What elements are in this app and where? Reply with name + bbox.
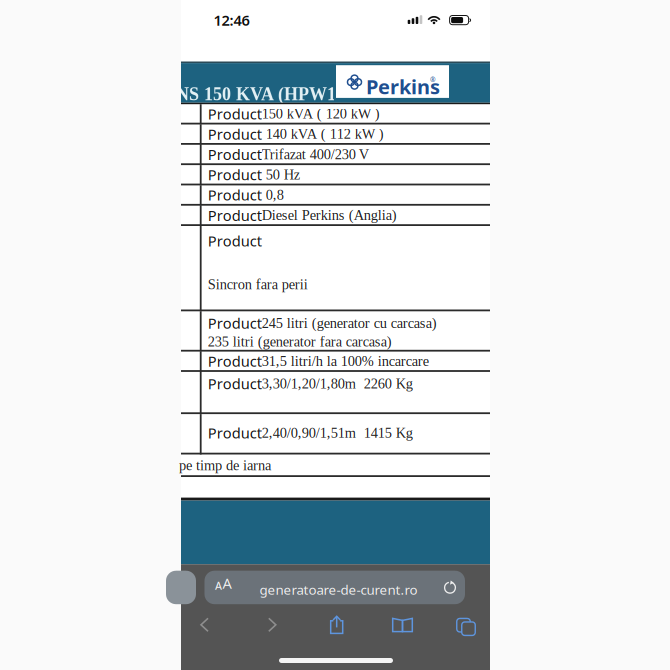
button[interactable]: Share <box>323 611 351 639</box>
staticText: Product <box>208 374 262 393</box>
staticText: 2,40/0,90/1,51m 1415 Kg <box>262 425 413 441</box>
staticText: Product <box>208 351 262 371</box>
staticText: Product <box>208 313 262 333</box>
staticText: 150 kVA ( 120 kW ) <box>262 106 380 122</box>
staticText: pe timp de iarna <box>179 457 271 473</box>
button[interactable]: A <box>204 571 465 604</box>
staticText: Product <box>208 104 262 123</box>
staticText: Product <box>208 165 266 184</box>
staticText: Product <box>208 185 266 205</box>
staticText: 31,5 litri/h la 100% incarcare <box>262 353 429 369</box>
staticText: A <box>222 573 231 593</box>
staticText: 12:46 <box>213 10 249 30</box>
staticText: 3,30/1,20/1,80m 2260 Kg <box>262 376 413 392</box>
staticText: 140 kVA ( 112 kW ) <box>266 126 384 142</box>
staticText: Product <box>208 231 262 250</box>
staticText: 50 Hz <box>266 167 300 182</box>
staticText: Product <box>208 145 262 164</box>
staticText: NS 150 KVA (HPW140) <box>176 84 360 104</box>
staticText: Product <box>208 124 266 144</box>
staticText: Trifazat 400/230 V <box>262 146 369 162</box>
button[interactable]: Forward <box>258 611 286 639</box>
button[interactable]: Bookmarks <box>388 611 416 639</box>
staticText: generatoare-de-curent.ro <box>259 581 417 598</box>
staticText: ® <box>430 75 436 84</box>
button[interactable]: Back <box>190 611 218 639</box>
staticText: Perkins <box>366 73 440 100</box>
staticText: 245 litri (generator cu carcasa) <box>262 315 437 331</box>
staticText: A <box>215 578 222 593</box>
staticText: Sincron fara perii <box>208 276 308 292</box>
staticText: Product <box>208 423 262 443</box>
staticText: Diesel Perkins (Anglia) <box>262 207 397 223</box>
staticText: 235 litri (generator fara carcasa) <box>208 334 392 350</box>
staticText: 0,8 <box>266 187 284 203</box>
button[interactable]: Tabs <box>445 605 473 633</box>
staticText: Product <box>208 205 262 225</box>
